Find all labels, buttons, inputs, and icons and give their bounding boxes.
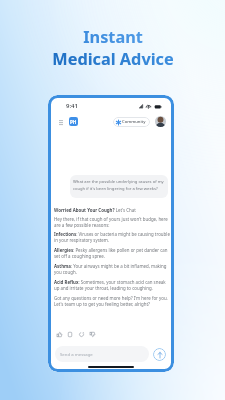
- staticText: Acid Reflux: Sometimes, your stomach aci…: [54, 279, 170, 291]
- button[interactable]: PH: [69, 117, 78, 126]
- button[interactable]: Regenerate: [77, 330, 85, 338]
- staticText: Instant: [83, 26, 143, 48]
- staticText: Medical Advice: [52, 48, 174, 70]
- button[interactable]: Like: [55, 330, 63, 338]
- staticText: 9:41: [66, 102, 78, 110]
- staticText: Infections: Viruses or bacteria might be…: [54, 231, 170, 243]
- button[interactable]: Community: [113, 117, 150, 127]
- button[interactable]: What are the possible underlying causes …: [70, 175, 168, 198]
- staticText: Asthma: Your airways might be a bit infl…: [54, 263, 170, 275]
- button[interactable]: Profile: [155, 116, 166, 127]
- staticText: What are the possible underlying causes …: [73, 179, 165, 191]
- button[interactable]: Send: [153, 348, 166, 361]
- staticText: Send a message: [60, 351, 93, 357]
- staticText: Allergies: Pesky allergens like pollen o…: [54, 247, 170, 259]
- button[interactable]: Copy: [66, 330, 74, 338]
- staticText: Got any questions or need more help? I'm…: [54, 295, 170, 307]
- staticText: PH: [70, 119, 77, 125]
- staticText: Community: [122, 119, 146, 125]
- staticText: Worried About Your Cough? Let's Chat: [54, 207, 136, 213]
- staticText: Hey there, if that cough of yours just w…: [54, 216, 170, 228]
- button[interactable]: Menu: [57, 118, 65, 126]
- button[interactable]: Dislike: [88, 330, 96, 338]
- button[interactable]: Send a message: [55, 346, 149, 362]
